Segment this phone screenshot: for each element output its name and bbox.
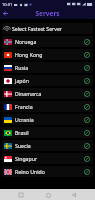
- button[interactable]: Suecia: [2, 140, 93, 151]
- other: Connect to Suecia: [83, 142, 91, 150]
- button[interactable]: Francia: [2, 101, 93, 112]
- other: Connect to Reino Unido: [83, 168, 91, 176]
- button[interactable]: Singapur: [2, 153, 93, 164]
- button[interactable]: Recents: [16, 190, 26, 200]
- button[interactable]: Dinamarca: [2, 88, 93, 99]
- staticText: Hong Kong: [15, 51, 83, 58]
- other: Connect to Ucrania: [83, 116, 91, 124]
- staticText: Dinamarca: [15, 90, 83, 97]
- staticText: Servers: [35, 9, 60, 18]
- other: Connect to Rusia: [83, 64, 91, 72]
- staticText: Ucrania: [15, 116, 83, 123]
- staticText: Select Fastest Server: [12, 25, 62, 32]
- button[interactable]: Noruega: [2, 36, 93, 47]
- other: Connect to Hong Kong: [83, 51, 91, 59]
- staticText: Rusia: [15, 64, 83, 71]
- button[interactable]: Japón: [2, 75, 93, 86]
- button[interactable]: Back: [0, 8, 11, 19]
- button[interactable]: Home: [43, 190, 53, 200]
- staticText: Reino Unido: [15, 168, 83, 175]
- button[interactable]: Back: [69, 190, 79, 200]
- staticText: Francia: [15, 103, 83, 110]
- button[interactable]: Select Fastest Server: [2, 23, 93, 34]
- staticText: Noruega: [15, 38, 83, 45]
- staticText: Singapur: [15, 155, 83, 162]
- staticText: Japón: [15, 77, 83, 84]
- other: Connect to Noruega: [83, 38, 91, 46]
- other: Connect to Brasil: [83, 129, 91, 137]
- staticText: 10:01: [2, 2, 13, 7]
- button[interactable]: Ucrania: [2, 114, 93, 125]
- other: Connect to Dinamarca: [83, 90, 91, 98]
- other: Connect to Singapur: [83, 155, 91, 163]
- button[interactable]: Rusia: [2, 62, 93, 73]
- other: Connect to Japón: [83, 77, 91, 85]
- button[interactable]: Hong Kong: [2, 49, 93, 60]
- other: Connect to Francia: [83, 103, 91, 111]
- button[interactable]: Brasil: [2, 127, 93, 138]
- staticText: Brasil: [15, 129, 83, 136]
- staticText: Suecia: [15, 142, 83, 149]
- button[interactable]: Reino Unido: [2, 166, 93, 177]
